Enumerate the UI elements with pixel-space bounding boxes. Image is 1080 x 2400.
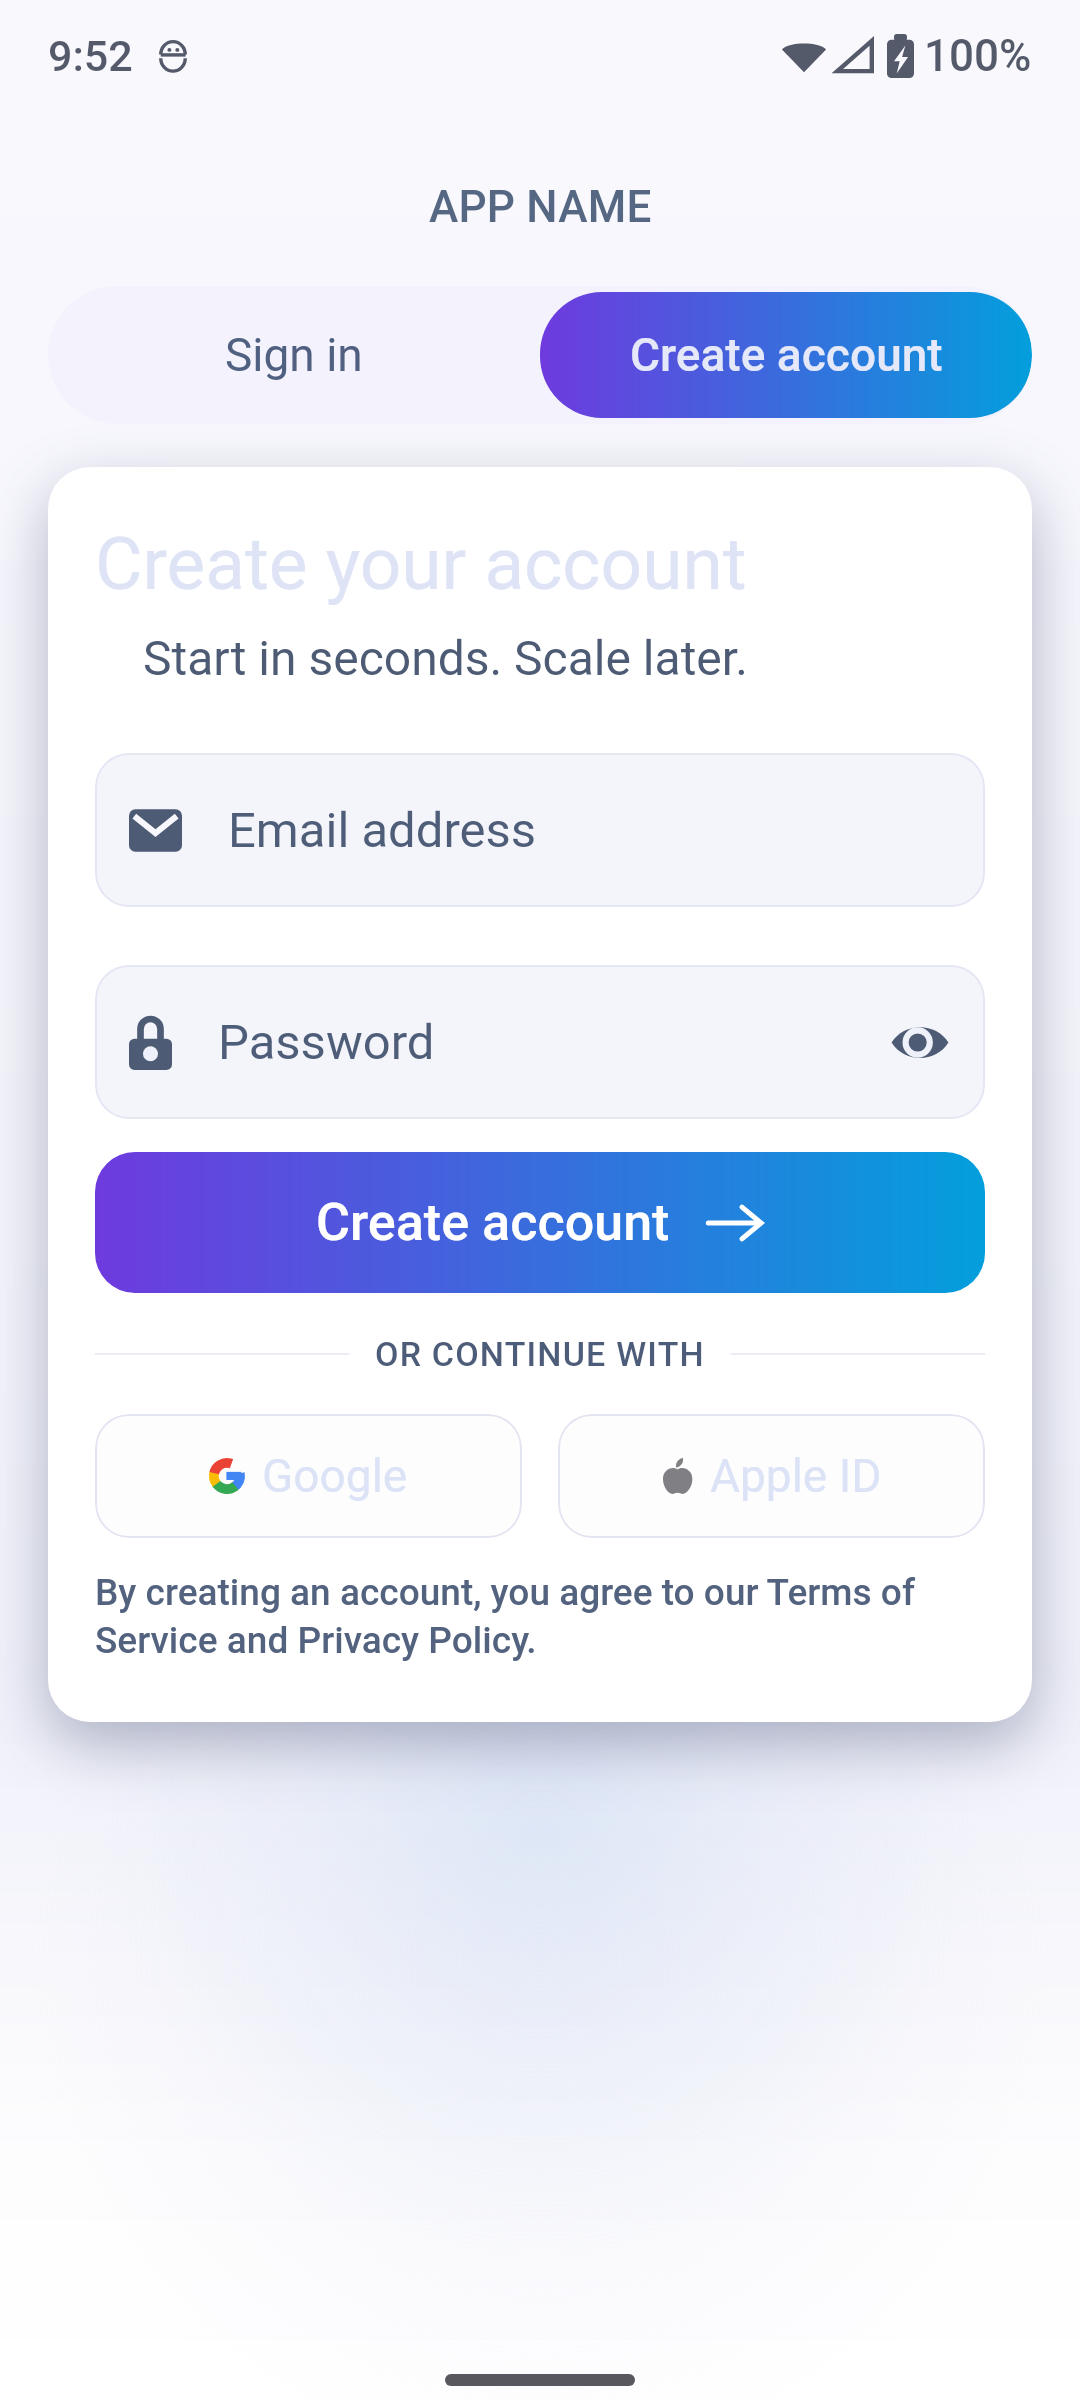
button[interactable]: Password: [95, 965, 985, 1119]
staticText: APP NAME: [429, 181, 652, 233]
staticText: OR CONTINUE WITH: [375, 1334, 705, 1374]
other: Show password: [891, 1022, 949, 1063]
staticText: Password: [218, 1014, 435, 1071]
staticText: Start in seconds. Scale later.: [143, 630, 748, 686]
staticText: 100%: [924, 30, 1032, 82]
staticText: Sign in: [225, 328, 363, 382]
staticText: Email address: [228, 802, 537, 859]
button[interactable]: Sign in: [48, 286, 540, 424]
staticText: 9:52: [48, 31, 133, 81]
button[interactable]: Create account: [540, 292, 1032, 418]
button[interactable]: Apple ID: [558, 1414, 985, 1538]
button[interactable]: Email address: [95, 753, 985, 907]
staticText: Create account: [630, 328, 943, 382]
staticText: Apple ID: [710, 1449, 882, 1503]
button[interactable]: Google: [95, 1414, 522, 1538]
staticText: Create account: [316, 1192, 670, 1253]
staticText: Google: [262, 1449, 408, 1503]
button[interactable]: Create account: [95, 1152, 985, 1293]
staticText: Create your account: [95, 521, 747, 607]
staticText: By creating an account, you agree to our…: [95, 1571, 985, 1662]
